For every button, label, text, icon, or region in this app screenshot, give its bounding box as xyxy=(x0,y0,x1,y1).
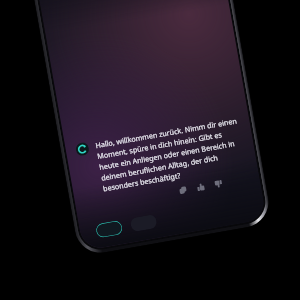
button[interactable]: Send message xyxy=(130,214,158,232)
button[interactable]: Thumbs down xyxy=(213,179,224,189)
button[interactable]: Assistant xyxy=(75,142,90,157)
button[interactable]: Copy xyxy=(178,185,188,195)
button[interactable]: Thumbs up xyxy=(196,182,206,192)
button[interactable]: Voice input xyxy=(95,220,123,238)
button[interactable]: Assistant xyxy=(75,115,246,197)
staticText: Hallo, willkommen zurück. Nimm dir einen… xyxy=(95,115,246,194)
